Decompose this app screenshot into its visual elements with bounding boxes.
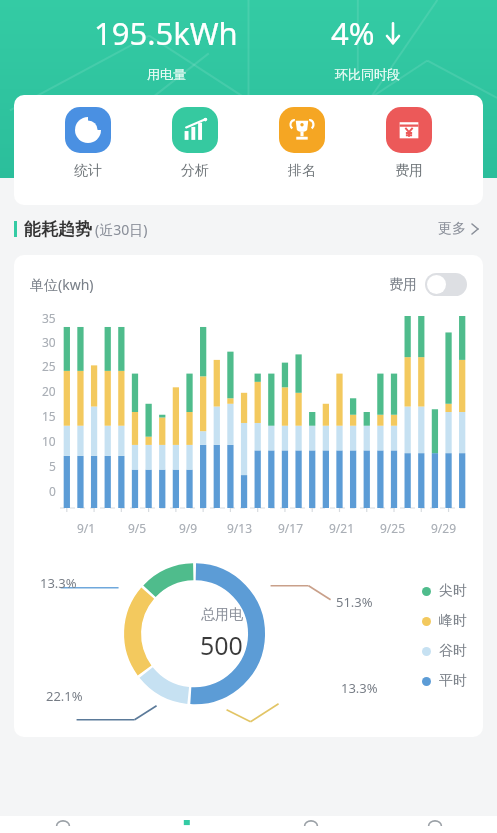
staticText: 用电量 [147, 66, 186, 82]
staticText: 13.3% [341, 679, 378, 697]
staticText: 20 [42, 383, 56, 399]
staticText: 15 [42, 408, 56, 424]
staticText: 9/17 [278, 520, 304, 536]
staticText: 9/21 [329, 520, 355, 536]
button[interactable]: Statistics tab [125, 816, 249, 833]
staticText: 13.3% [40, 574, 77, 592]
staticText: 9/1 [77, 520, 96, 536]
staticText: 0 [49, 483, 56, 499]
staticText: 分析 [181, 162, 209, 180]
staticText: 统计 [74, 162, 102, 180]
staticText: 195.5kWh [94, 12, 238, 54]
staticText: 总用电 [201, 606, 243, 624]
staticText: 9/25 [380, 520, 406, 536]
staticText: 9/29 [431, 520, 457, 536]
staticText: 9/13 [227, 520, 253, 536]
staticText: 更多 [438, 220, 466, 238]
staticText: 费用 [389, 276, 417, 294]
staticText: 51.3% [336, 593, 373, 611]
button[interactable]: Navigation tab [0, 816, 125, 833]
staticText: 25 [42, 358, 56, 374]
button[interactable]: Navigation tab [249, 816, 373, 833]
button[interactable]: 统计 [55, 103, 121, 184]
staticText: 峰时 [439, 612, 467, 630]
staticText: 单位(kwh) [30, 275, 94, 294]
staticText: 尖时 [439, 582, 467, 600]
staticText: 4% [331, 12, 375, 54]
staticText: 9/5 [128, 520, 147, 536]
staticText: 22.1% [46, 687, 83, 705]
staticText: 环比同时段 [335, 66, 400, 82]
button[interactable]: 更多 [434, 216, 483, 242]
staticText: 谷时 [439, 642, 467, 660]
staticText: 费用 [395, 162, 423, 180]
staticText: 35 [42, 310, 56, 326]
button[interactable]: Toggle cost display [425, 273, 467, 296]
staticText: 10 [42, 433, 56, 449]
staticText: (近30日) [95, 220, 148, 239]
button[interactable]: Navigation tab [373, 816, 497, 833]
staticText: 排名 [288, 162, 316, 180]
staticText: 能耗趋势 [24, 219, 92, 240]
staticText: 500 [200, 628, 243, 662]
button[interactable]: 排名 [269, 103, 335, 184]
staticText: 平时 [439, 672, 467, 690]
staticText: 30 [42, 334, 56, 350]
button[interactable]: 分析 [162, 103, 228, 184]
staticText: 5 [49, 458, 56, 474]
button[interactable]: 费用 [376, 103, 442, 184]
staticText: 9/9 [179, 520, 198, 536]
